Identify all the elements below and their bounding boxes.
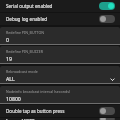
button[interactable]: Ignore MQTT bbox=[0, 118, 120, 120]
staticText: Redefine PIN_BUZZER bbox=[6, 49, 43, 54]
button[interactable]: Nodeinfo broadcast interval (seconds) bbox=[0, 86, 120, 104]
staticText: Debug log enabled bbox=[6, 16, 96, 22]
staticText: Rebroadcast mode bbox=[6, 69, 38, 74]
button[interactable]: Redefine PIN_BUZZER bbox=[0, 46, 120, 64]
button[interactable]: Debug log enabled bbox=[0, 13, 120, 25]
button[interactable]: Redefine PIN_BUTTON bbox=[0, 27, 120, 45]
other: Expand dropdown bbox=[109, 76, 115, 82]
staticText: Nodeinfo broadcast interval (seconds) bbox=[6, 89, 70, 94]
staticText: Double tap as button press bbox=[6, 108, 96, 114]
button[interactable]: Rebroadcast mode bbox=[0, 66, 120, 84]
staticText: 19 bbox=[6, 55, 115, 62]
staticText: Serial output enabled bbox=[6, 3, 96, 9]
staticText: Redefine PIN_BUTTON bbox=[6, 30, 45, 35]
staticText: 0 bbox=[6, 36, 115, 43]
staticText: Ignore MQTT bbox=[6, 118, 96, 120]
staticText: ALL bbox=[6, 75, 109, 82]
staticText: 10800 bbox=[6, 95, 115, 102]
button[interactable]: Serial output enabled bbox=[0, 0, 120, 12]
button[interactable]: Double tap as button press bbox=[0, 105, 120, 117]
